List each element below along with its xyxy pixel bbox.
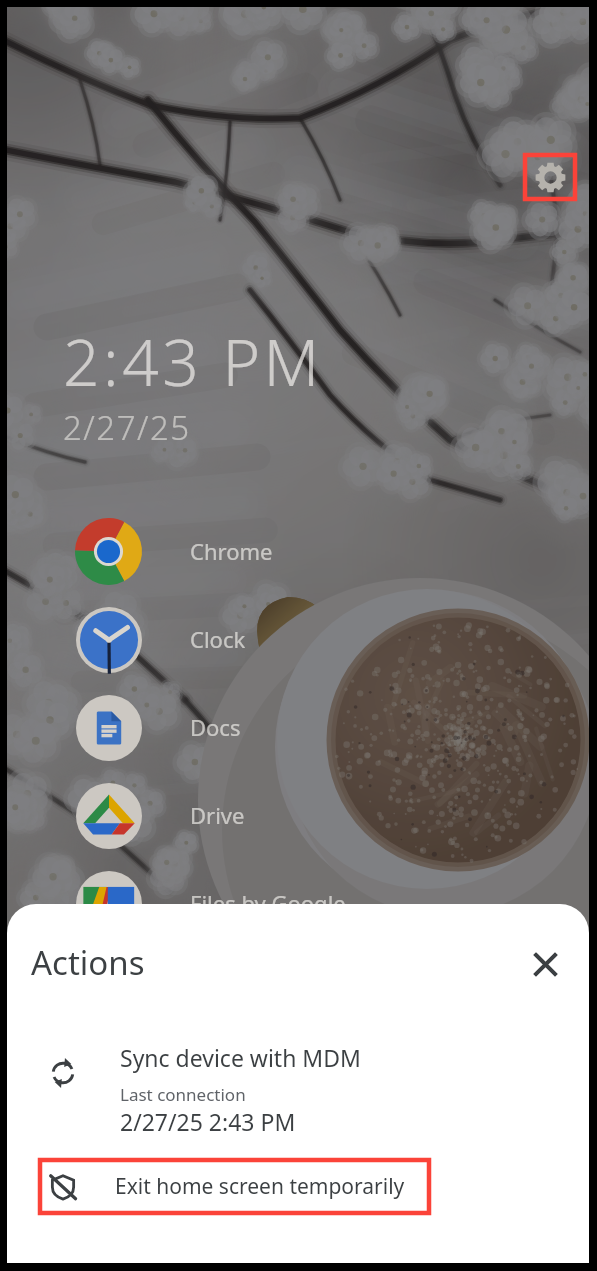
staticText: Sync device with MDM [120,1042,361,1073]
button[interactable]: Docs [75,683,405,771]
button[interactable]: Chrome [75,507,405,595]
button[interactable]: Exit home screen temporarily [40,1160,429,1213]
button[interactable]: Close [521,940,569,988]
staticText: Chrome [190,536,273,566]
staticText: Exit home screen temporarily [115,1172,405,1201]
staticText: 2:43 PM [63,318,323,405]
staticText: Actions [31,940,145,985]
button[interactable]: Files by Google [75,859,405,947]
staticText: Clock [190,624,246,654]
staticText: Files by Google [190,888,346,918]
button[interactable]: Clock [75,595,405,683]
staticText: 2/27/25 [63,405,191,450]
staticText: Drive [190,800,245,830]
staticText: 2/27/25 2:43 PM [120,1106,296,1137]
staticText: Docs [190,712,241,742]
button[interactable]: Drive [75,771,405,859]
button[interactable]: Sync device with MDM [27,1030,447,1130]
staticText: Last connection [120,1083,246,1106]
button[interactable]: Settings [525,155,575,199]
